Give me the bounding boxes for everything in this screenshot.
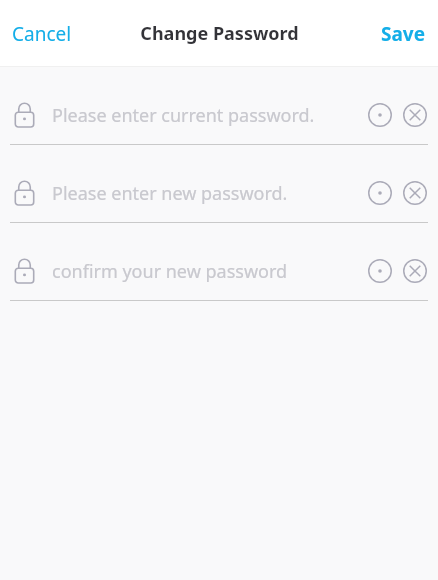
button[interactable]: confirm your new password xyxy=(0,242,438,300)
button[interactable]: Cancel xyxy=(0,13,84,55)
staticText: Please enter new password. xyxy=(52,181,364,206)
staticText: Please enter current password. xyxy=(52,103,364,128)
staticText: confirm your new password xyxy=(52,259,364,284)
button[interactable]: Clear text xyxy=(403,103,427,127)
button[interactable]: Please enter new password. xyxy=(0,164,438,222)
button[interactable]: Save xyxy=(369,13,438,55)
button[interactable]: Clear text xyxy=(403,181,427,205)
button[interactable]: Show password xyxy=(368,181,392,205)
staticText: Cancel xyxy=(12,21,72,47)
button[interactable]: Clear text xyxy=(403,259,427,283)
staticText: Change Password xyxy=(140,21,299,46)
button[interactable]: Show password xyxy=(368,259,392,283)
button[interactable]: Please enter current password. xyxy=(0,86,438,144)
button[interactable]: Show password xyxy=(368,103,392,127)
staticText: Save xyxy=(381,21,426,47)
